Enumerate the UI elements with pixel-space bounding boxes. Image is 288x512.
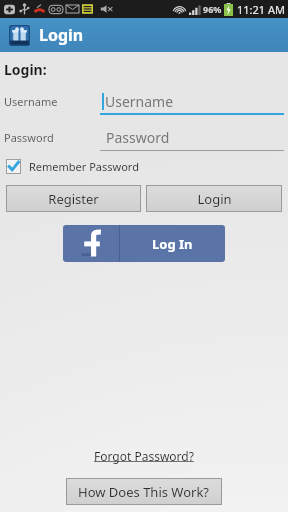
staticText: How Does This Work? [78, 483, 210, 501]
button[interactable]: Username [100, 88, 284, 115]
staticText: Username [4, 94, 100, 109]
staticText: Login [197, 190, 232, 208]
staticText: 96% [203, 3, 222, 15]
button[interactable]: Log In [63, 225, 225, 262]
button[interactable]: Register [6, 185, 141, 212]
staticText: Password [106, 128, 170, 147]
staticText: Register [48, 190, 99, 208]
button[interactable]: How Does This Work? [66, 478, 222, 505]
button[interactable]: Login [146, 185, 282, 212]
staticText: Username [105, 92, 174, 111]
staticText: Login [39, 24, 84, 46]
staticText: Remember Password [29, 159, 139, 174]
staticText: Login: [4, 60, 47, 79]
staticText: Forgot Password? [94, 448, 194, 464]
staticText: Log In [152, 235, 193, 253]
button[interactable]: Password [100, 124, 284, 151]
staticText: Password [4, 130, 100, 145]
button[interactable]: Forgot Password? [90, 446, 198, 466]
staticText: 11:21 AM [237, 2, 285, 17]
button[interactable]: Remember Password [6, 159, 139, 174]
